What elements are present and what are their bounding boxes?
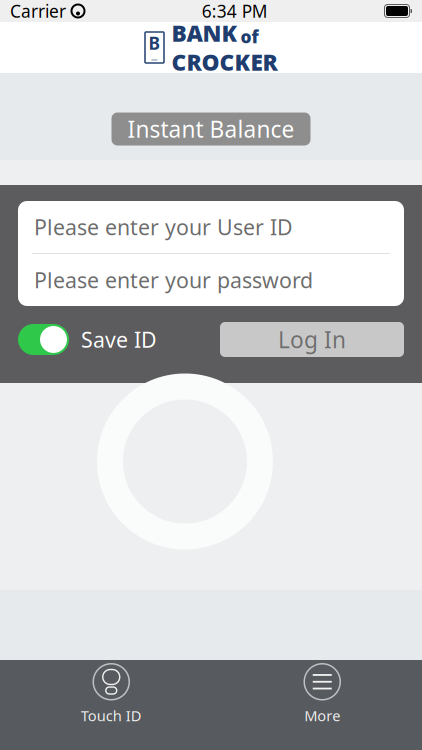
button[interactable]: Touch ID — [81, 663, 142, 725]
staticText: — — [151, 55, 158, 63]
button[interactable]: Instant Balance — [111, 112, 310, 145]
staticText: Please enter your password — [34, 266, 313, 294]
staticText: BANK — [171, 18, 237, 48]
button[interactable]: More — [303, 663, 341, 725]
staticText: Please enter your User ID — [34, 213, 293, 241]
staticText: B — [148, 32, 160, 55]
staticText: Instant Balance — [127, 114, 294, 144]
staticText: CROCKER — [171, 47, 277, 77]
button[interactable]: Please enter your password — [18, 254, 404, 306]
staticText: Save ID — [81, 325, 157, 354]
staticText: Carrier — [10, 0, 66, 22]
button[interactable]: Please enter your User ID — [18, 201, 404, 253]
staticText: of — [240, 25, 258, 48]
staticText: 6:34 PM — [202, 0, 268, 22]
staticText: Log In — [278, 324, 346, 354]
staticText: Touch ID — [81, 706, 142, 725]
staticText: More — [304, 706, 340, 725]
button[interactable]: Log In — [220, 322, 404, 357]
button[interactable]: Save ID — [18, 324, 157, 355]
